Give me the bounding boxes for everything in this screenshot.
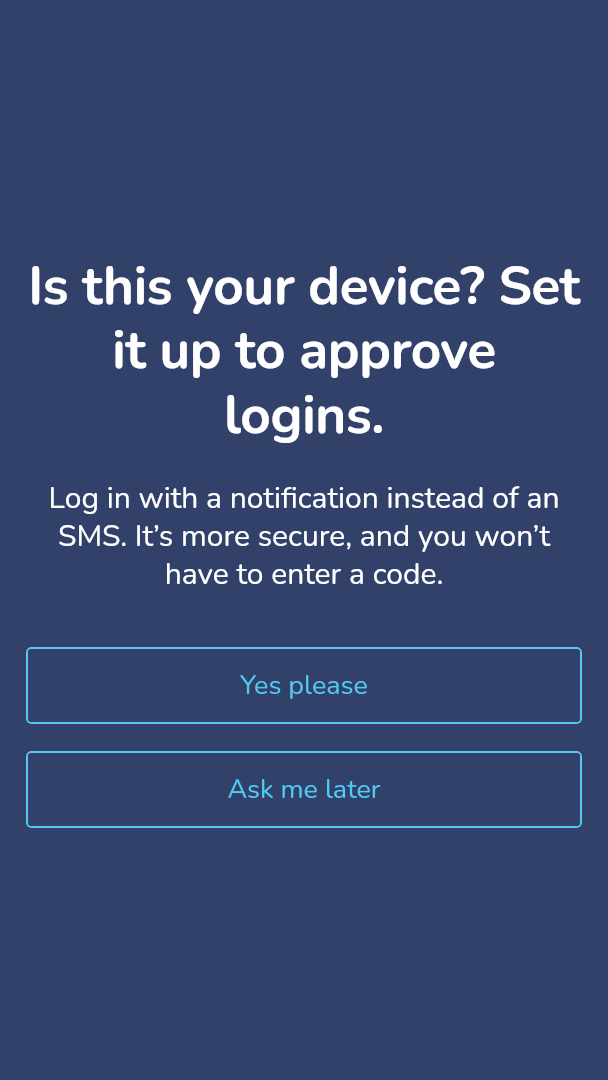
staticText: Ask me later (227, 771, 381, 808)
staticText: Yes please (240, 667, 368, 704)
staticText: Is this your device? Set it up to approv… (12, 250, 596, 452)
button[interactable]: Ask me later (26, 751, 582, 828)
staticText: Log in with a notification instead of an… (44, 478, 564, 595)
button[interactable]: Yes please (26, 647, 582, 724)
